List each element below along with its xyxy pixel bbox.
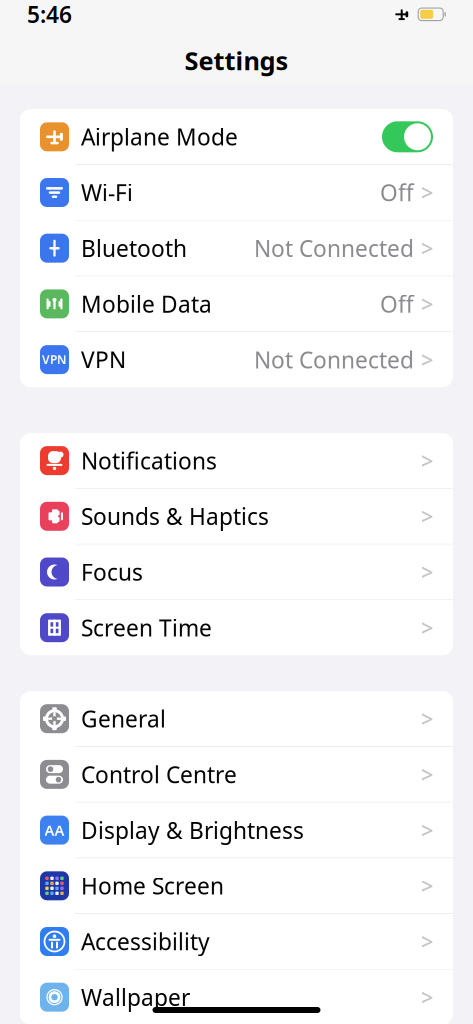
staticText: > — [420, 445, 433, 476]
staticText: Bluetooth — [81, 233, 187, 263]
staticText: > — [420, 926, 433, 956]
button[interactable]: Wallpaper — [20, 970, 453, 1024]
button[interactable]: AA — [20, 803, 453, 858]
button[interactable]: Airplane Mode — [20, 109, 453, 164]
staticText: Notifications — [81, 445, 217, 476]
staticText: > — [420, 289, 433, 319]
staticText: > — [420, 871, 433, 901]
staticText: Accessibility — [81, 926, 210, 956]
staticText: Display & Brightness — [81, 815, 304, 845]
button[interactable]: Home Screen — [20, 858, 453, 913]
button[interactable]: Sounds & Haptics — [20, 489, 453, 544]
staticText: Airplane Mode — [81, 122, 238, 152]
button[interactable]: Wi-Fi — [20, 165, 453, 220]
button[interactable]: Control Centre — [20, 747, 453, 802]
button[interactable]: Notifications — [20, 433, 453, 488]
staticText: General — [81, 704, 166, 734]
staticText: > — [420, 177, 433, 207]
staticText: AA — [44, 820, 64, 840]
staticText: Home Screen — [81, 871, 224, 901]
staticText: > — [420, 557, 433, 587]
staticText: VPN — [81, 344, 126, 375]
staticText: Control Centre — [81, 759, 237, 789]
staticText: Wallpaper — [81, 982, 190, 1012]
staticText: Off — [380, 289, 414, 319]
button[interactable]: VPN — [20, 332, 453, 387]
staticText: > — [420, 759, 433, 789]
staticText: Off — [380, 177, 414, 207]
button[interactable]: Accessibility — [20, 914, 453, 969]
staticText: VPN — [42, 352, 67, 367]
staticText: > — [420, 613, 433, 643]
staticText: Mobile Data — [81, 289, 212, 319]
staticText: Not Connected — [254, 344, 414, 375]
staticText: > — [420, 982, 433, 1012]
staticText: > — [420, 233, 433, 263]
staticText: Focus — [81, 557, 143, 587]
button[interactable]: General — [20, 691, 453, 746]
staticText: > — [420, 704, 433, 734]
staticText: 5:46 — [27, 0, 72, 29]
staticText: > — [420, 501, 433, 531]
staticText: Sounds & Haptics — [81, 501, 269, 531]
button[interactable]: Mobile Data — [20, 276, 453, 331]
staticText: Not Connected — [254, 233, 414, 263]
staticText: Screen Time — [81, 613, 212, 643]
button[interactable]: Screen Time — [20, 600, 453, 655]
button[interactable]: Focus — [20, 544, 453, 599]
staticText: Wi-Fi — [81, 177, 133, 207]
staticText: Settings — [184, 43, 288, 77]
button[interactable]: Bluetooth — [20, 221, 453, 276]
staticText: > — [420, 344, 433, 375]
staticText: > — [420, 815, 433, 845]
